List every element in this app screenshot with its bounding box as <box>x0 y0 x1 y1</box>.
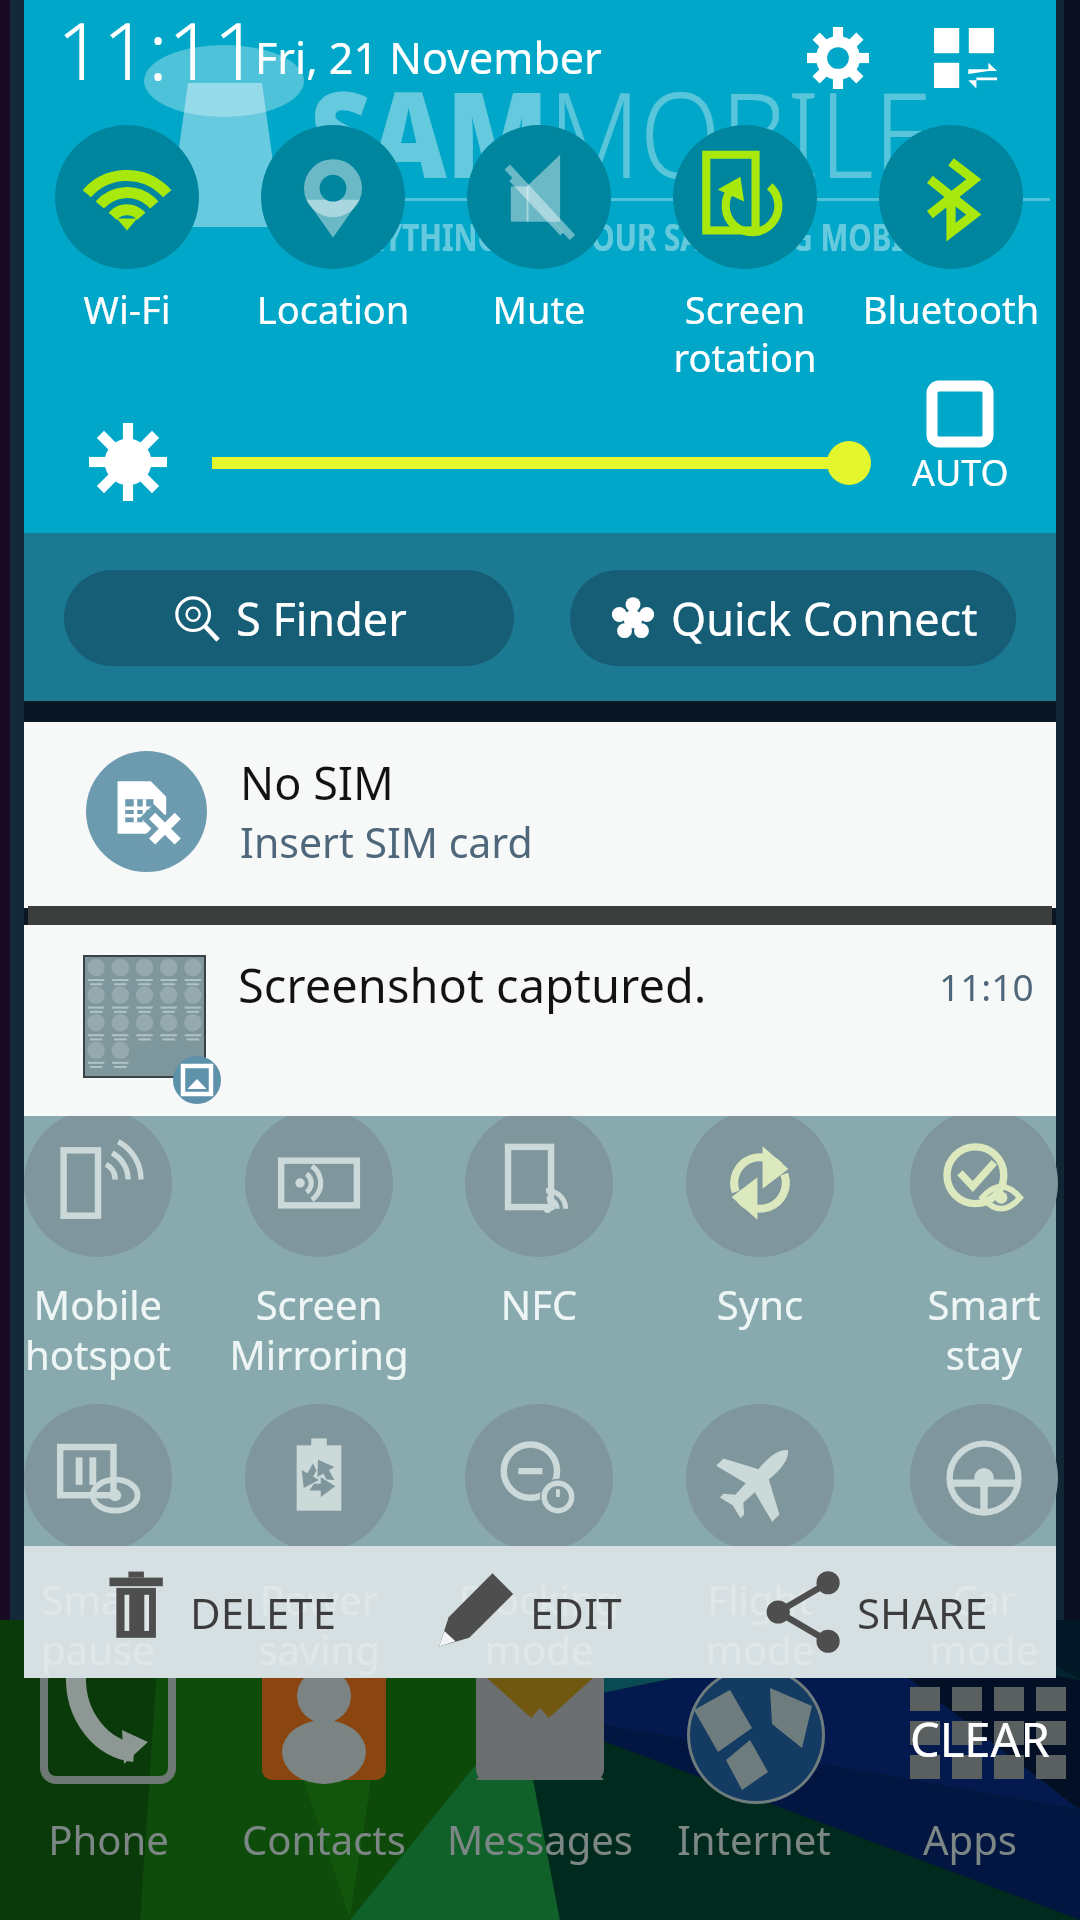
button[interactable]: CLEAR <box>910 1707 1060 1771</box>
button[interactable]: Screenshot captured. <box>24 925 1056 1116</box>
staticText: SAM <box>310 52 548 213</box>
staticText: S Finder <box>236 588 407 649</box>
button[interactable]: No SIM <box>24 722 1056 908</box>
staticText: Insert SIM card <box>240 814 533 870</box>
button[interactable]: Mobile hotspot <box>0 1109 208 1379</box>
staticText: Screenshot captured. <box>238 953 707 1017</box>
staticText: Flight mode <box>650 1572 870 1677</box>
button[interactable]: Quick Connect <box>570 570 1016 666</box>
button[interactable]: Mute <box>436 125 642 335</box>
staticText: Smart stay <box>874 1277 1080 1382</box>
button[interactable]: Car mode <box>874 1404 1080 1674</box>
button[interactable]: Brightness <box>78 412 178 512</box>
staticText: AUTO <box>912 448 1009 497</box>
staticText: 11:10 <box>939 961 1034 1011</box>
button[interactable]: EDIT <box>434 1569 622 1655</box>
button[interactable]: Flight mode <box>650 1404 870 1674</box>
staticText: Contacts <box>242 1812 406 1866</box>
staticText: Sync <box>650 1277 870 1331</box>
button[interactable]: Sync <box>650 1109 870 1379</box>
staticText: Blocking mode <box>429 1572 649 1677</box>
staticText: MOBILE <box>548 52 932 213</box>
button[interactable]: NFC <box>429 1109 649 1379</box>
staticText: Screen rotation <box>642 283 848 383</box>
button[interactable]: Wi-Fi <box>24 125 230 335</box>
staticText: Screen Mirroring <box>209 1277 429 1382</box>
staticText: SHARE <box>857 1584 988 1641</box>
button[interactable]: Location <box>230 125 436 335</box>
staticText: Apps <box>923 1812 1017 1866</box>
staticText: Location <box>230 283 436 335</box>
staticText: Mute <box>436 283 642 335</box>
staticText: Internet <box>677 1812 831 1866</box>
button[interactable]: Settings <box>788 8 888 108</box>
staticText: 11:11 <box>57 0 260 103</box>
button[interactable]: SHARE <box>761 1569 988 1655</box>
staticText: Bluetooth <box>848 283 1054 335</box>
staticText: Car mode <box>874 1572 1080 1677</box>
staticText: DELETE <box>190 1584 337 1641</box>
button[interactable]: Screen Mirroring <box>209 1109 429 1379</box>
button[interactable]: DELETE <box>94 1569 337 1655</box>
button[interactable]: Edit quick settings <box>914 8 1014 108</box>
staticText: Fri, 21 November <box>255 28 602 87</box>
staticText: No SIM <box>240 752 394 813</box>
button[interactable]: Smart stay <box>874 1109 1080 1379</box>
staticText: Phone <box>48 1812 169 1866</box>
staticText: CLEAR <box>910 1707 1050 1771</box>
staticText: NFC <box>429 1277 649 1331</box>
staticText: Smart pause <box>0 1572 208 1677</box>
button[interactable]: Screen rotation <box>642 125 848 383</box>
button[interactable]: Smart pause <box>0 1404 208 1674</box>
button[interactable]: Power saving <box>209 1404 429 1674</box>
staticText: Power saving <box>209 1572 429 1677</box>
staticText: Mobile hotspot <box>0 1277 208 1382</box>
staticText: Messages <box>447 1812 633 1866</box>
staticText: Wi-Fi <box>24 283 230 335</box>
button[interactable]: AUTO <box>890 386 1030 497</box>
button[interactable]: S Finder <box>64 570 514 666</box>
staticText: Quick Connect <box>671 588 978 649</box>
staticText: EDIT <box>530 1584 622 1641</box>
button[interactable]: Blocking mode <box>429 1404 649 1674</box>
button[interactable]: Bluetooth <box>848 125 1054 335</box>
staticText: EVERYTHING FOR YOUR SAMSUNG MOBILE <box>312 211 936 263</box>
